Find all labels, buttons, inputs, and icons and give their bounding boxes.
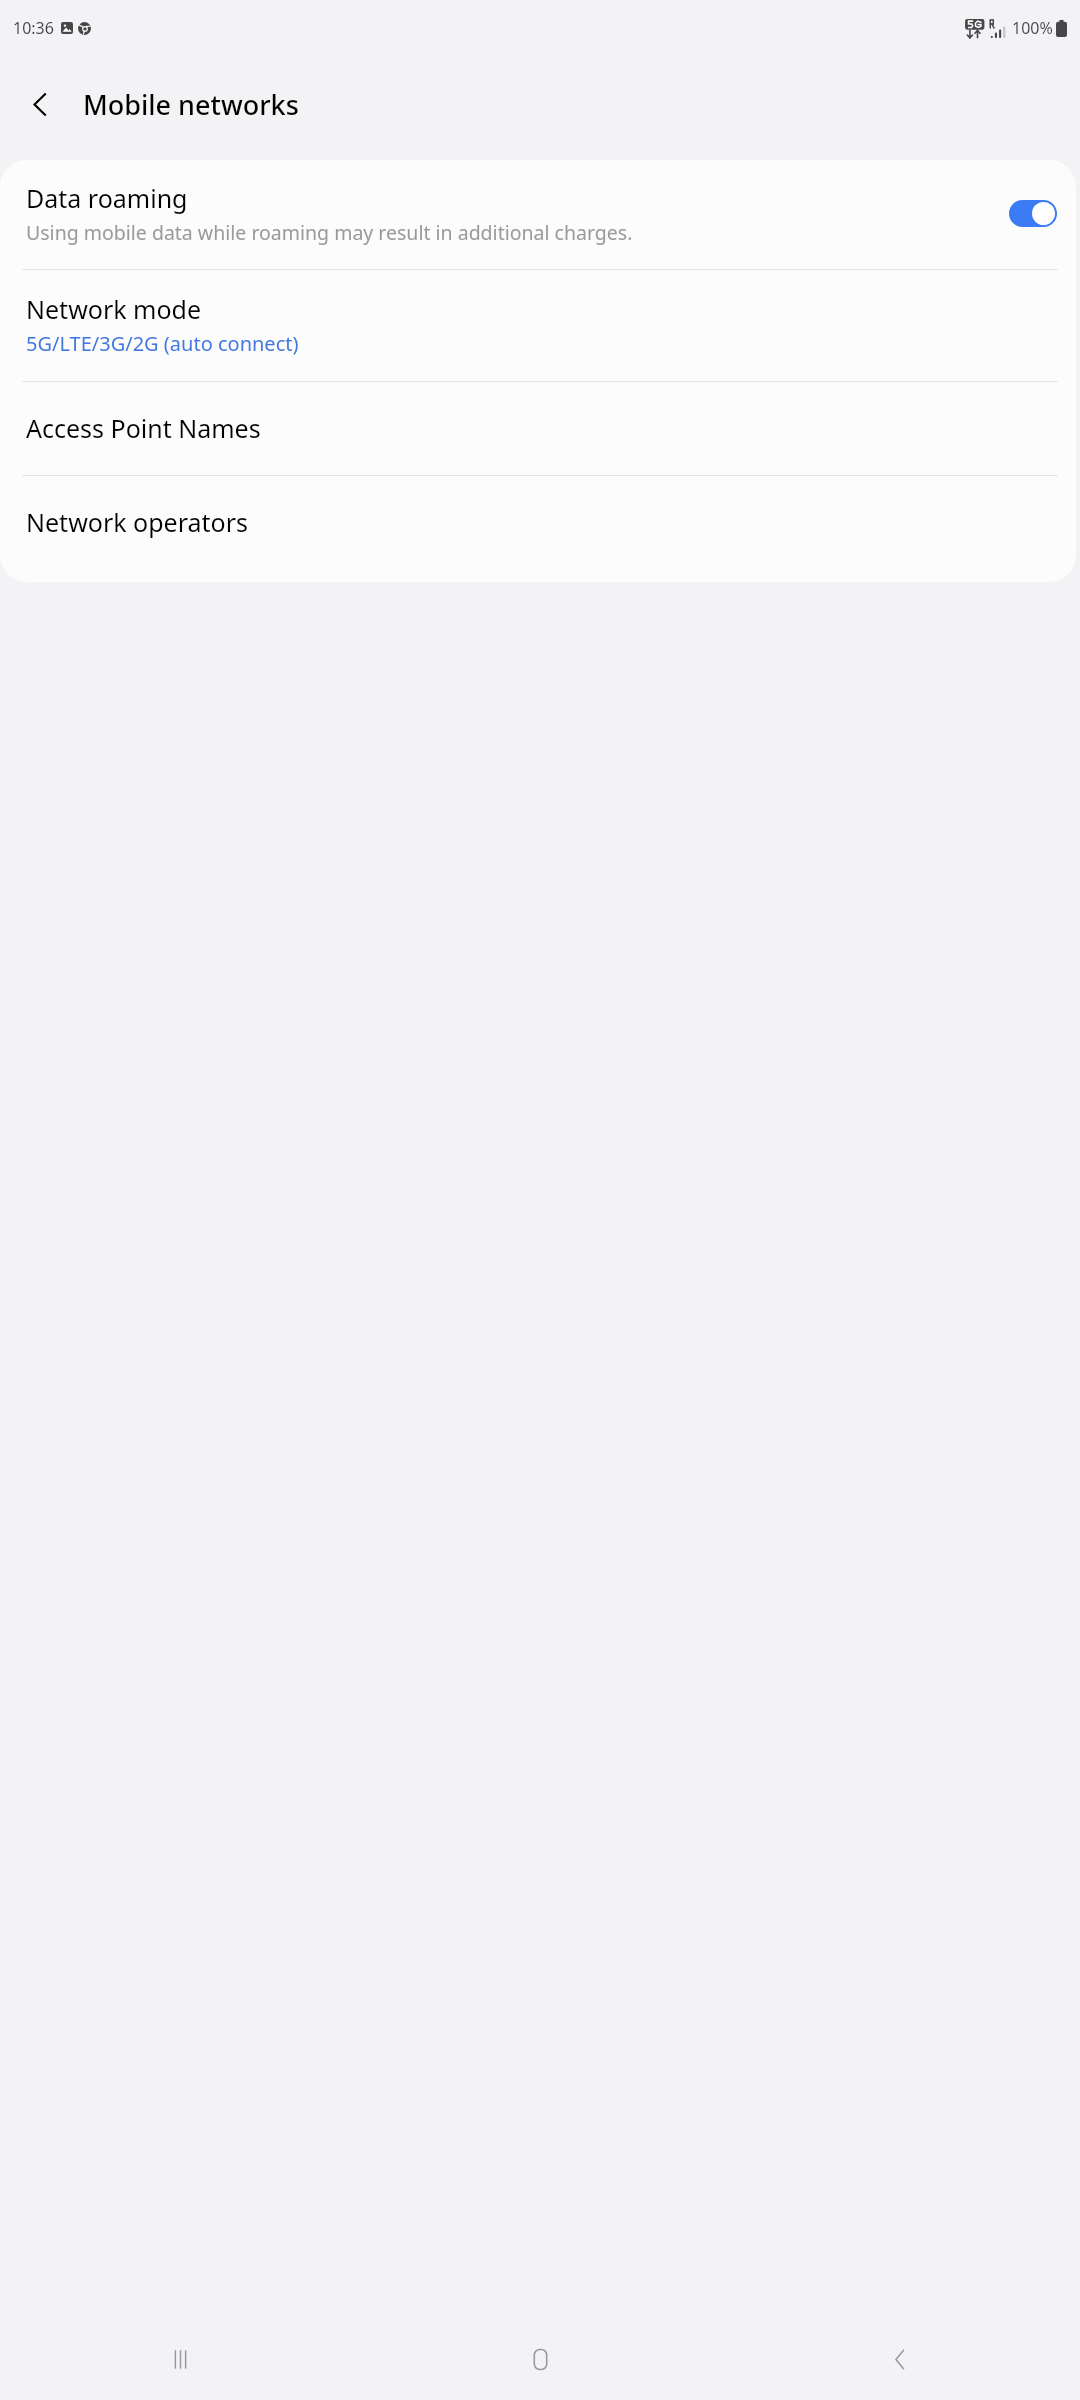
staticText: Data roaming <box>26 181 188 215</box>
button[interactable]: Home <box>360 2318 720 2400</box>
staticText: Mobile networks <box>83 86 299 123</box>
button[interactable]: Data roaming <box>1009 200 1057 227</box>
staticText: 10:36 <box>13 17 54 39</box>
staticText: 100% <box>1012 17 1053 39</box>
staticText: Network mode <box>26 292 202 326</box>
button[interactable]: Network operators <box>0 476 1076 569</box>
button[interactable]: Navigate up <box>8 72 72 136</box>
button[interactable]: Data roaming <box>0 160 1076 269</box>
staticText: 5G/LTE/3G/2G (auto connect) <box>26 330 299 357</box>
button[interactable]: Recent apps <box>0 2318 360 2400</box>
button[interactable]: Access Point Names <box>0 382 1076 475</box>
staticText: Access Point Names <box>26 411 261 445</box>
button[interactable]: Network mode <box>0 270 1076 381</box>
staticText: Using mobile data while roaming may resu… <box>26 219 633 246</box>
staticText: Network operators <box>26 505 248 539</box>
